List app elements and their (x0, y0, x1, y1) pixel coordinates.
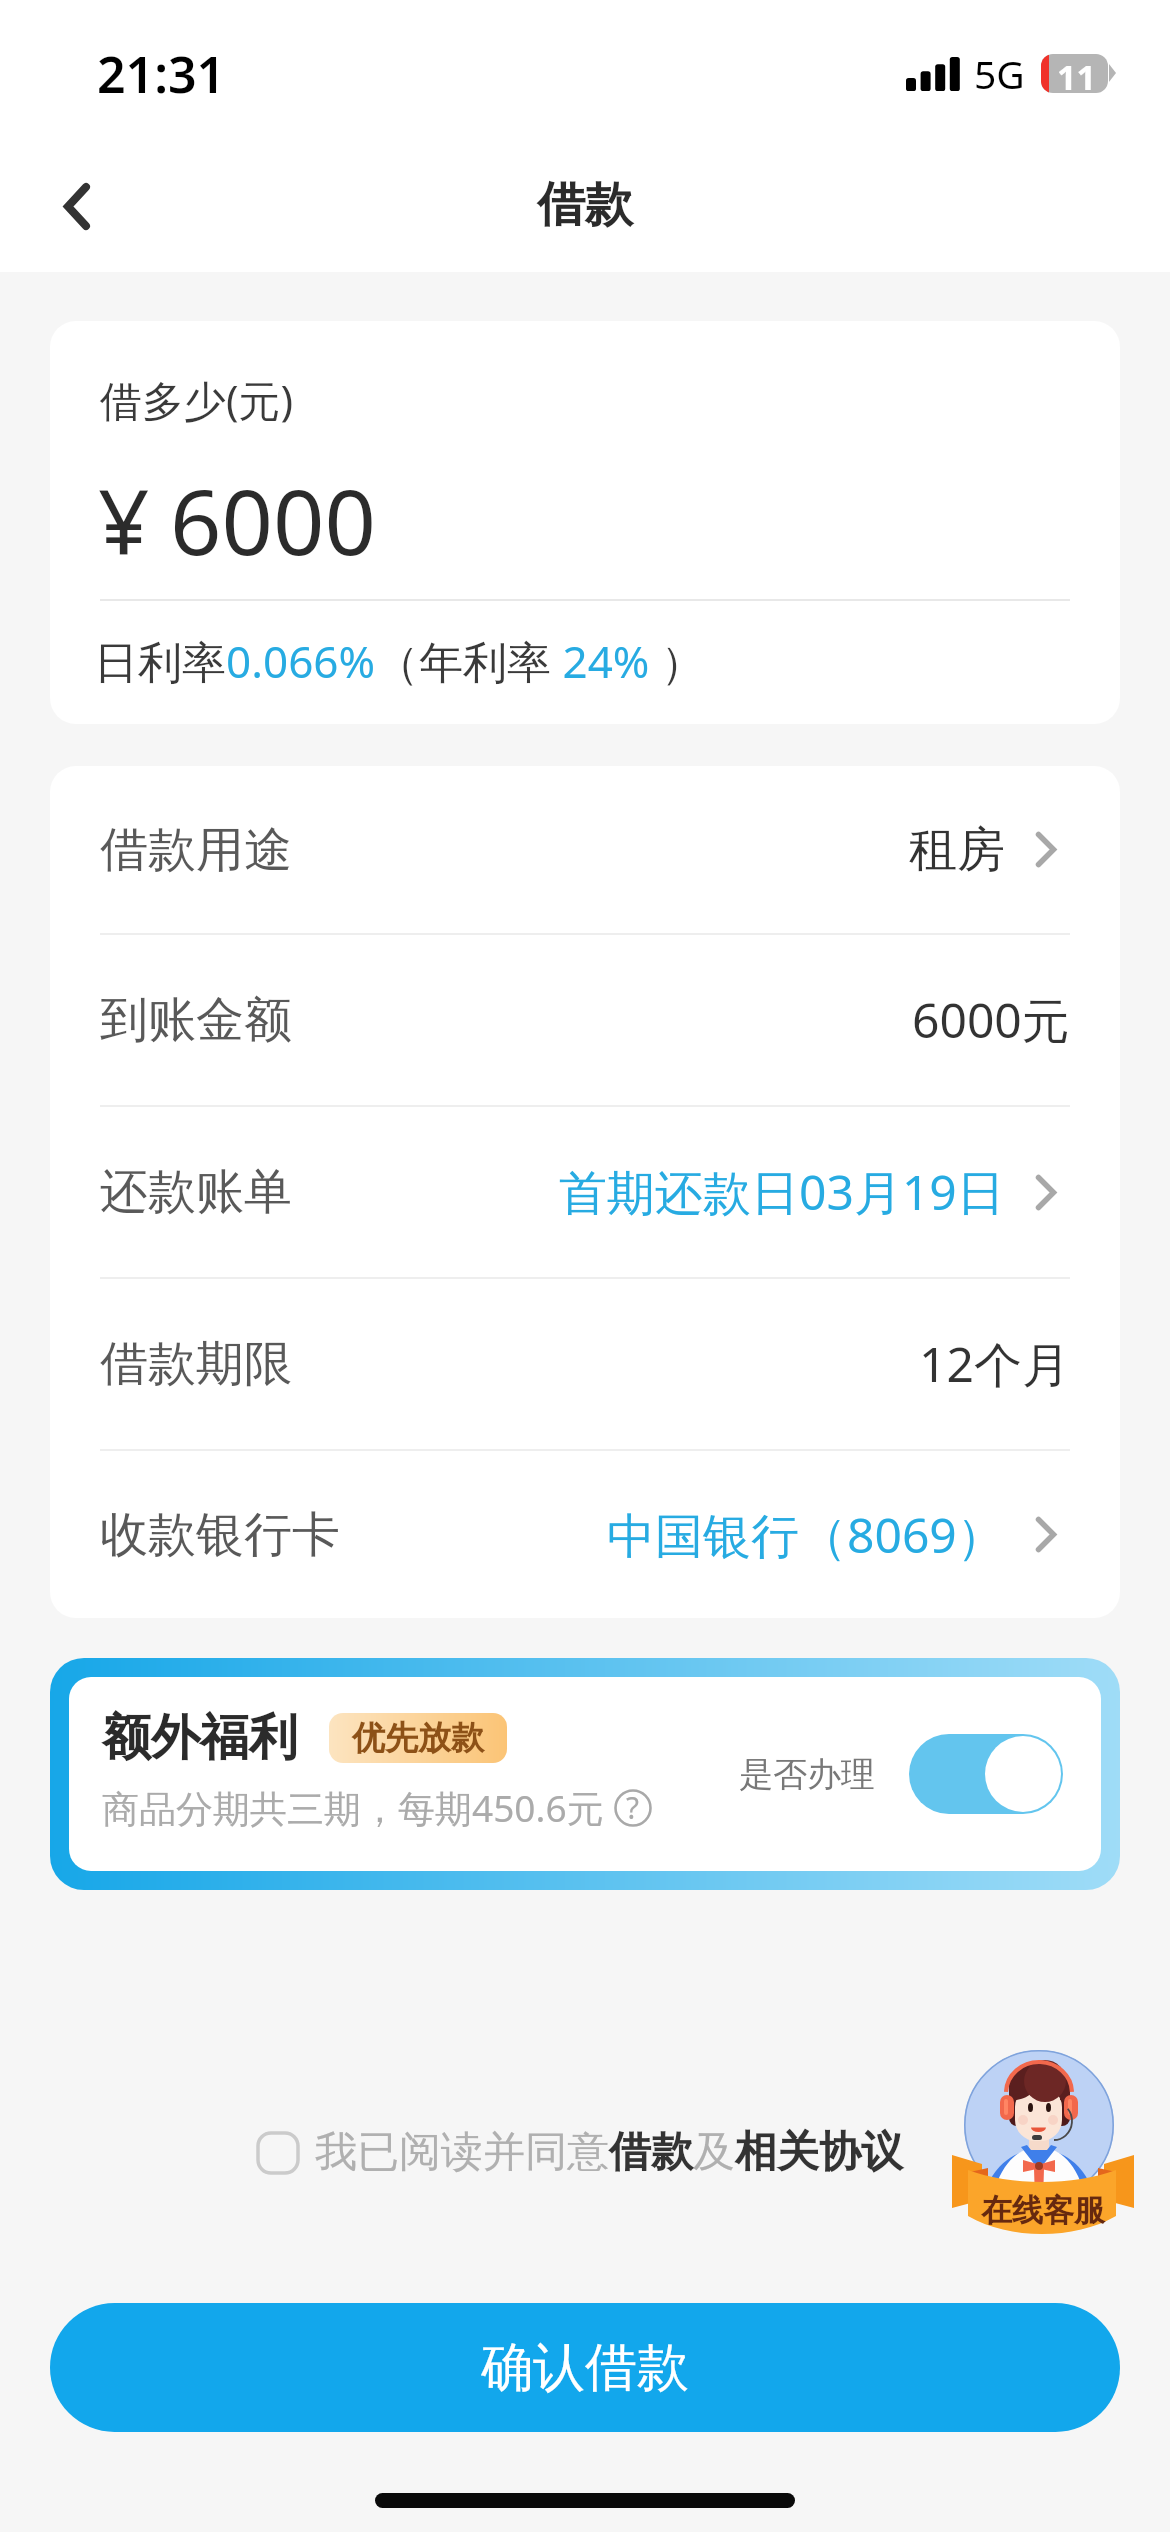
staticText: 收款银行卡 (100, 1505, 340, 1565)
staticText: 还款账单 (100, 1162, 292, 1222)
staticText: 首期还款日03月19日 (559, 1159, 1005, 1225)
button[interactable]: 借款用途 (100, 766, 1070, 933)
staticText: 借多少(元) (100, 371, 294, 428)
staticText: 是否办理 (739, 1753, 875, 1796)
staticText: 借款 (537, 175, 633, 235)
button[interactable]: 还款账单 (100, 1107, 1070, 1277)
staticText: 6000元 (912, 987, 1070, 1053)
staticText: ¥ (98, 459, 150, 582)
staticText: 确认借款 (481, 2335, 689, 2401)
staticText: 额外福利 (102, 1707, 298, 1769)
staticText: ? (626, 1787, 640, 1828)
staticText: 在线客服 (981, 2191, 1105, 2230)
button[interactable]: 确认借款 (50, 2303, 1120, 2432)
button[interactable]: 我已阅读并同意借款及相关协议 (256, 2126, 903, 2179)
staticText: 21:31 (97, 40, 226, 108)
staticText: 11 (1057, 54, 1096, 93)
button[interactable]: 在线客服 (950, 2050, 1140, 2245)
button[interactable]: 收款银行卡 (100, 1451, 1070, 1618)
staticText: 5G (974, 47, 1025, 100)
button[interactable]: 借款期限 (100, 1279, 1070, 1449)
staticText: 我已阅读并同意借款及相关协议 (315, 2126, 903, 2179)
button[interactable]: 是否办理 (909, 1734, 1063, 1814)
staticText: 商品分期共三期，每期450.6元 (102, 1782, 604, 1833)
staticText: 借款期限 (100, 1334, 292, 1394)
button[interactable]: 额外福利 (69, 1677, 1101, 1871)
button[interactable]: Back (22, 151, 132, 261)
staticText: 12个月 (919, 1331, 1070, 1397)
staticText: 借款用途 (100, 820, 292, 880)
staticText: 中国银行（8069） (607, 1502, 1005, 1568)
staticText: 日利率0.066%（年利率 24% ） (94, 631, 705, 691)
staticText: 优先放款 (352, 1717, 484, 1759)
staticText: 6000 (170, 459, 376, 582)
button[interactable]: 到账金额 (100, 935, 1070, 1105)
staticText: 租房 (909, 820, 1005, 880)
staticText: 到账金额 (100, 990, 292, 1050)
